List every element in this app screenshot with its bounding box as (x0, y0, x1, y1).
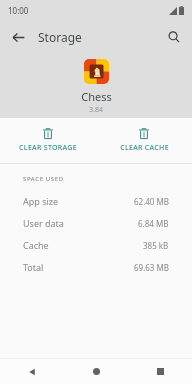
button[interactable]: CLEAR STORAGE (0, 123, 96, 158)
staticText: App size (23, 195, 59, 207)
button[interactable]: User data (0, 212, 192, 234)
button[interactable]: Back (0, 359, 64, 384)
button[interactable]: Cache (0, 234, 192, 256)
staticText: Storage (38, 29, 82, 45)
button[interactable]: Search (162, 25, 186, 49)
staticText: Total (23, 261, 44, 273)
button[interactable]: Home (64, 359, 128, 384)
button[interactable]: Recent apps (128, 359, 192, 384)
staticText: 6.84 MB (138, 218, 169, 229)
staticText: CLEAR CACHE (120, 143, 169, 153)
button[interactable]: Total (0, 256, 192, 278)
button[interactable]: CLEAR CACHE (96, 123, 192, 158)
staticText: Cache (23, 239, 49, 251)
staticText: 10:00 (8, 5, 29, 16)
staticText: User data (23, 217, 64, 229)
staticText: 3.84 (89, 105, 103, 115)
staticText: Chess (81, 89, 112, 104)
staticText: SPACE USED (23, 175, 64, 183)
staticText: 62.40 MB (134, 196, 169, 207)
button[interactable]: Back (6, 25, 30, 49)
staticText: 385 kB (143, 240, 169, 251)
staticText: CLEAR STORAGE (19, 143, 77, 153)
staticText: 69.63 MB (134, 262, 169, 273)
button[interactable]: App size (0, 190, 192, 212)
